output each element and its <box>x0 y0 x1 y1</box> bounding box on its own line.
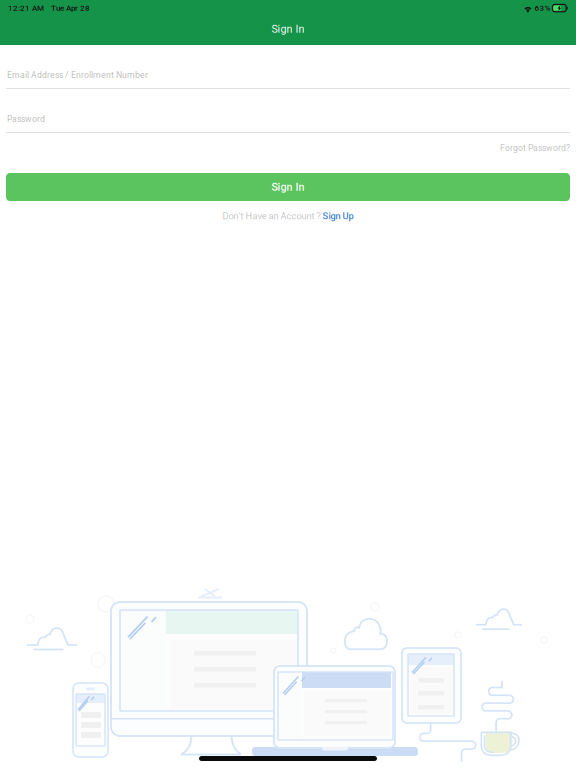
button[interactable]: Forgot Password? <box>6 138 570 158</box>
staticText: Sign In <box>271 23 304 35</box>
staticText: Sign Up <box>322 210 353 221</box>
button[interactable]: Sign Up <box>322 210 353 221</box>
staticText: Don't Have an Account ? <box>222 210 322 221</box>
staticText: Email Address / Enrollment Number <box>7 70 148 80</box>
staticText: 63% <box>534 3 550 13</box>
staticText: Tue Apr 28 <box>51 3 90 13</box>
button[interactable]: Sign In <box>6 173 570 201</box>
staticText: Sign In <box>271 181 304 193</box>
staticText: 12:21 AM <box>8 3 44 13</box>
staticText: Password <box>7 114 45 124</box>
staticText: Forgot Password? <box>500 143 570 153</box>
